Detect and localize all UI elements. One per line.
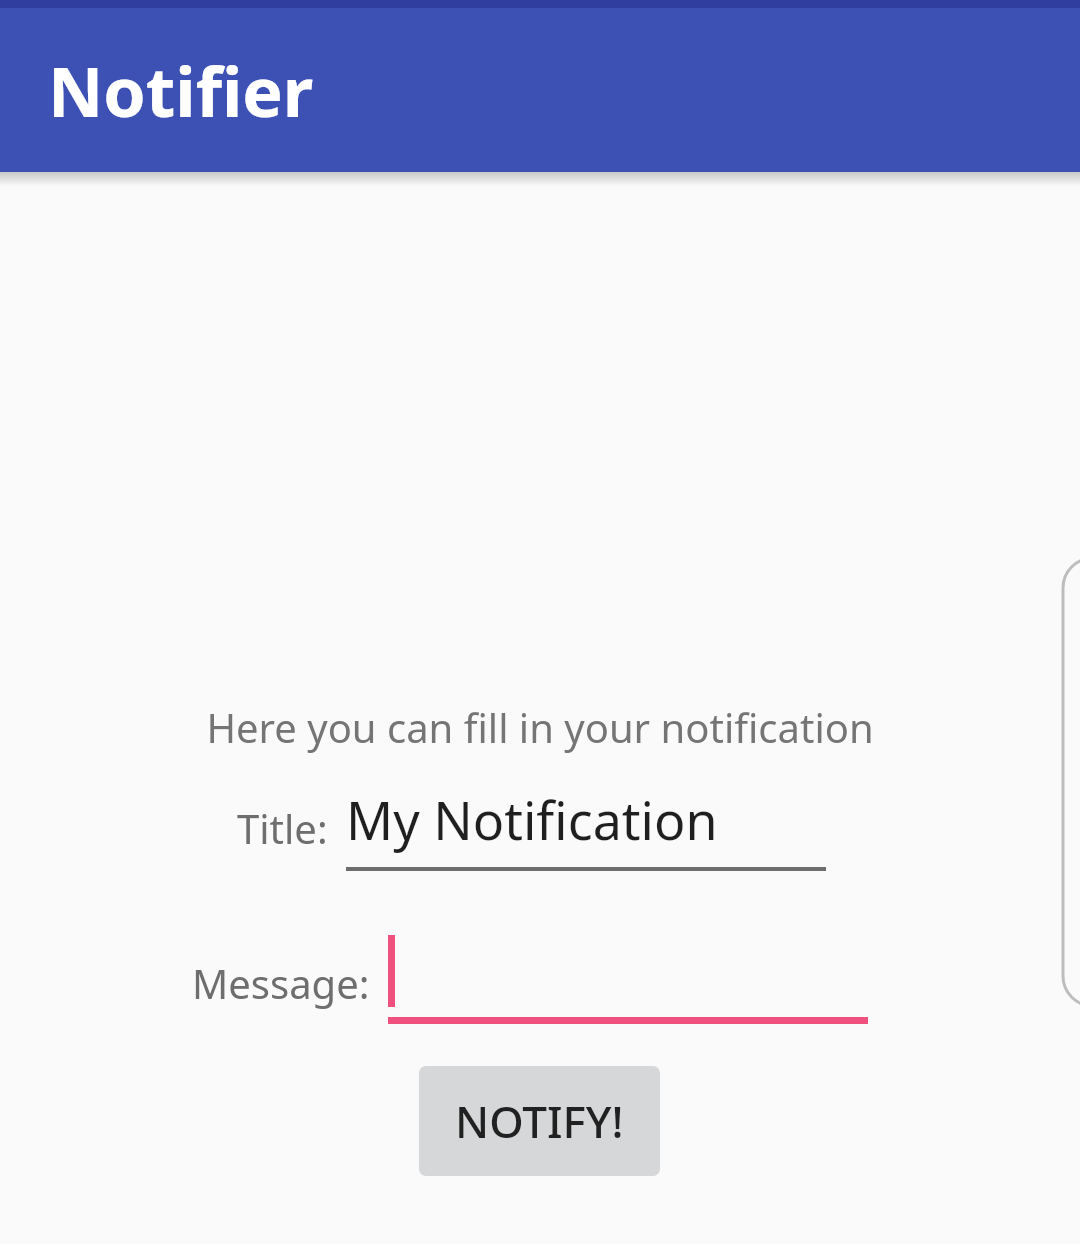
button[interactable]: [388, 935, 868, 1024]
staticText: Title:: [237, 801, 328, 855]
staticText: NOTIFY!: [455, 1091, 624, 1151]
button[interactable]: My Notification: [346, 784, 826, 871]
staticText: Message:: [192, 956, 370, 1010]
staticText: My Notification: [346, 784, 718, 855]
staticText: Notifier: [48, 44, 314, 137]
staticText: Here you can fill in your notification: [0, 700, 1080, 754]
button[interactable]: Notify: [419, 1066, 660, 1176]
